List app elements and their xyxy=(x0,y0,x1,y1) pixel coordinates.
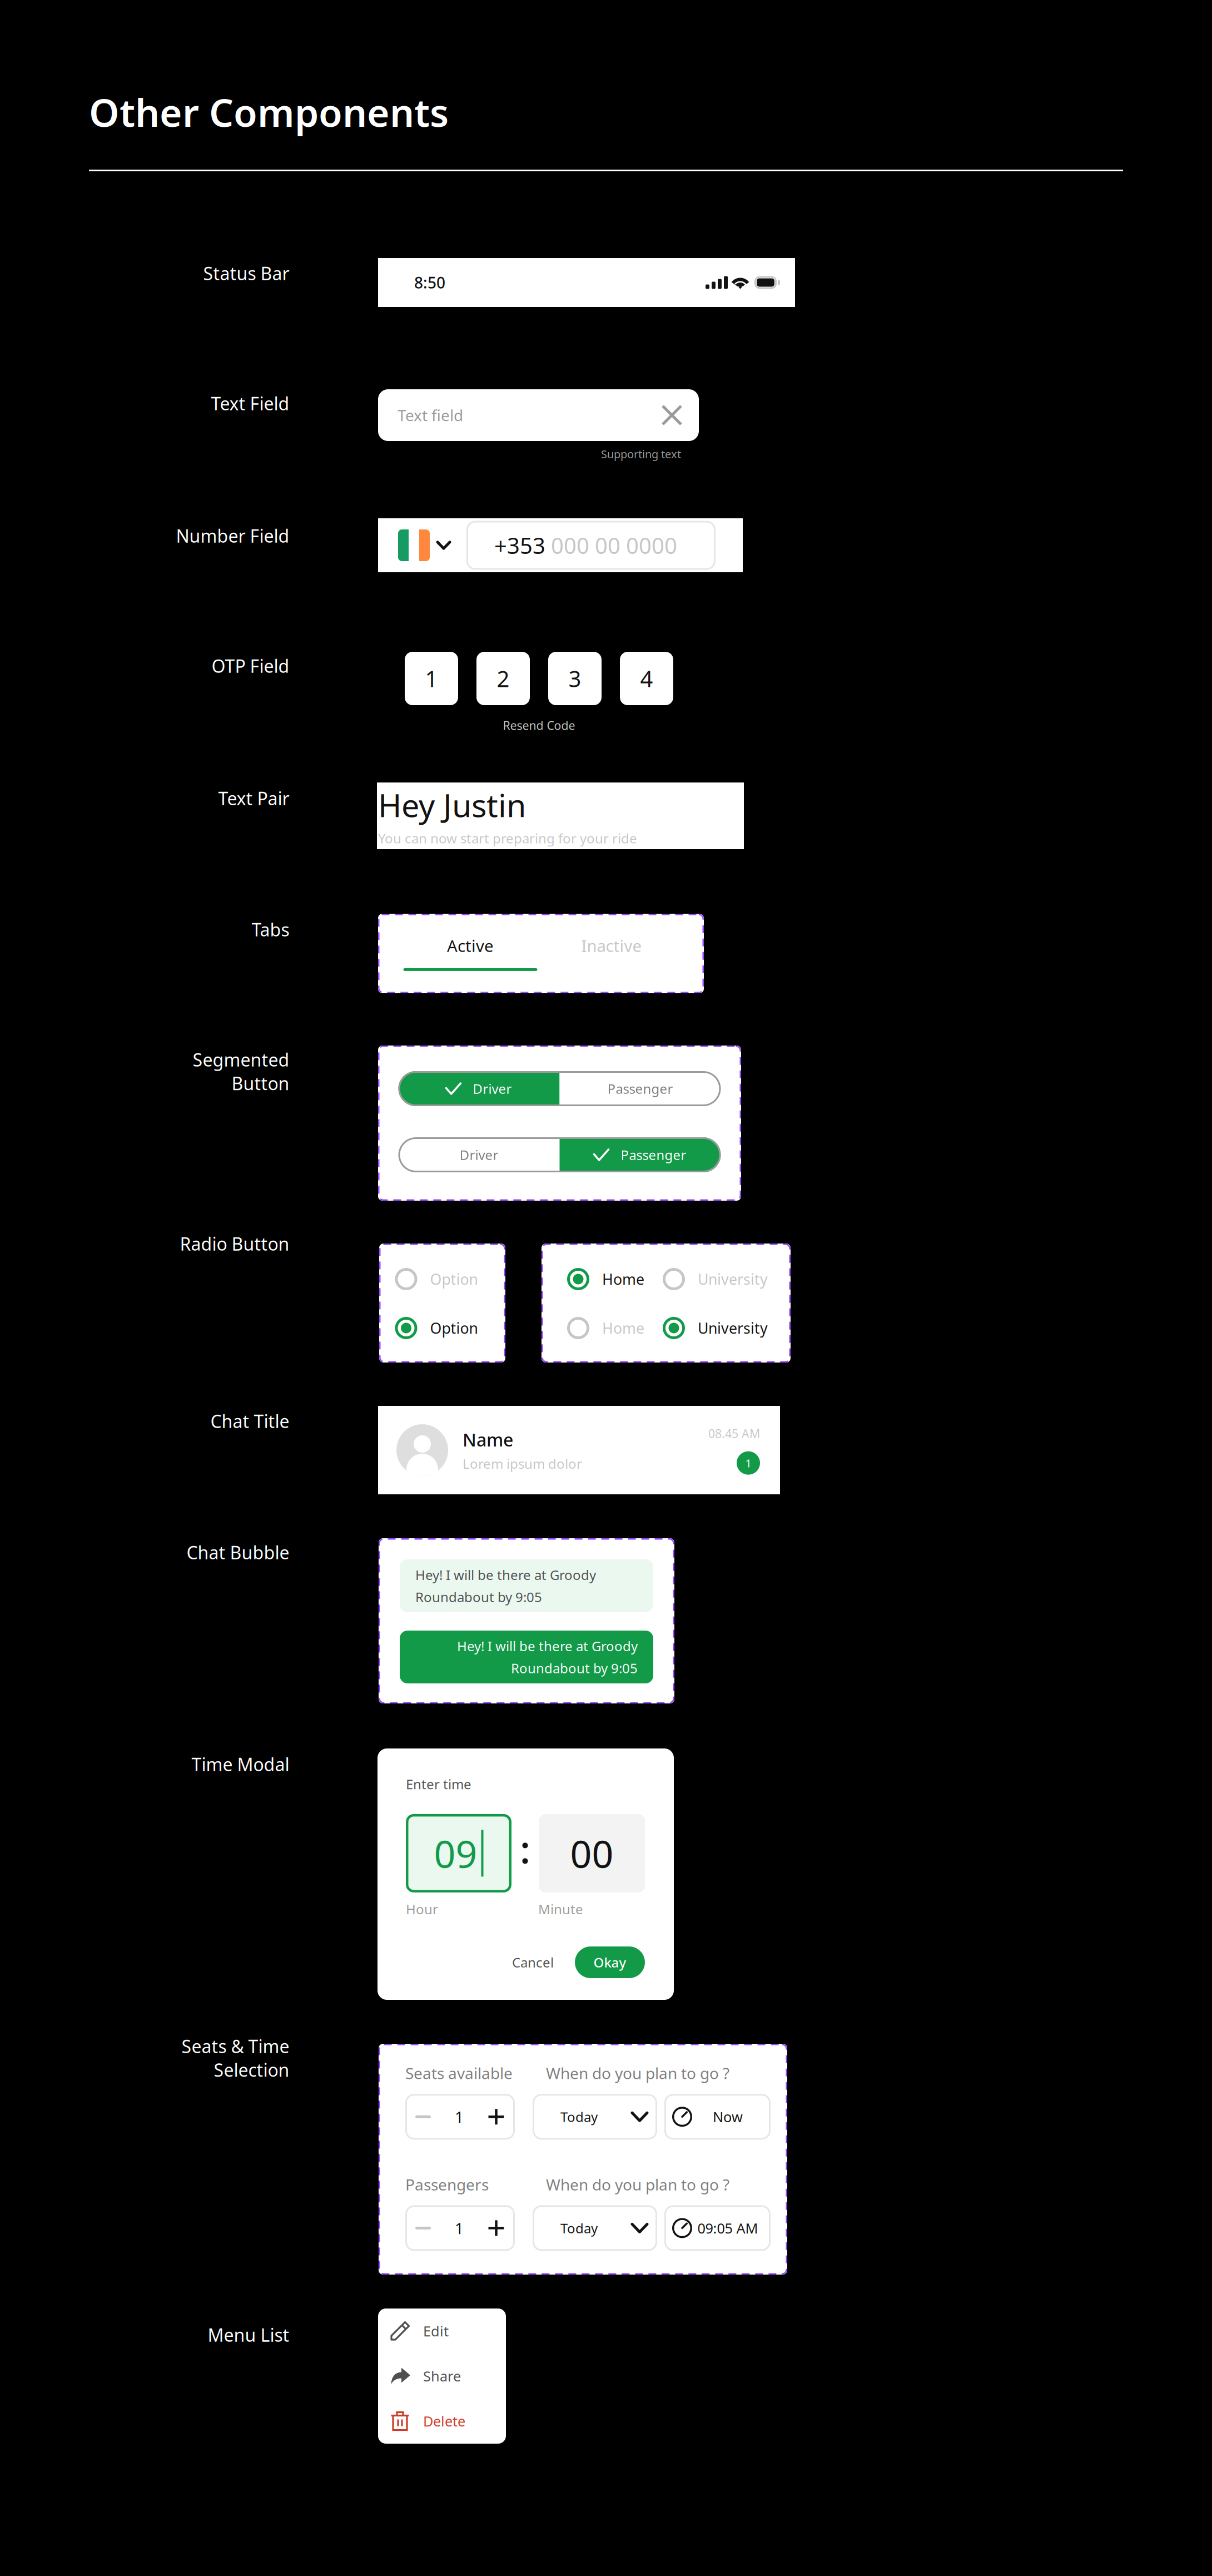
staticText: Roundabout by 9:05 xyxy=(511,1659,638,1677)
staticText: Now xyxy=(713,2107,743,2126)
button[interactable]: Clear text xyxy=(658,402,686,429)
button[interactable]: Option xyxy=(395,1268,491,1290)
staticText: Inactive xyxy=(581,935,642,957)
button[interactable]: Passenger xyxy=(560,1137,721,1172)
staticText: 09:05 AM xyxy=(697,2219,758,2237)
staticText: 8:50 xyxy=(414,272,445,293)
button[interactable]: Delete xyxy=(378,2399,506,2444)
staticText: Passenger xyxy=(621,1146,686,1164)
staticText: Passenger xyxy=(607,1080,673,1098)
staticText: Roundabout by 9:05 xyxy=(415,1588,542,1606)
button[interactable]: Option xyxy=(395,1317,491,1339)
staticText: Minute xyxy=(538,1900,583,1918)
button[interactable]: University xyxy=(663,1317,781,1339)
button[interactable]: Increase xyxy=(478,2094,515,2140)
button[interactable]: Edit xyxy=(378,2309,506,2354)
staticText: Seats available xyxy=(405,2063,513,2083)
button[interactable]: Home xyxy=(567,1268,666,1290)
staticText: When do you plan to go ? xyxy=(546,2063,729,2083)
staticText: Time Modal xyxy=(191,1752,289,1776)
button[interactable]: 3 xyxy=(548,652,602,705)
staticText: Home xyxy=(602,1318,644,1338)
staticText: University xyxy=(698,1318,768,1338)
staticText: Status Bar xyxy=(203,261,289,285)
staticText: Option xyxy=(430,1269,478,1289)
button[interactable]: Select country code xyxy=(398,529,450,561)
staticText: Lorem ipsum dolor xyxy=(463,1455,582,1472)
button[interactable]: Passenger xyxy=(560,1071,721,1106)
button[interactable]: Okay xyxy=(575,1946,645,1978)
button[interactable]: Cancel xyxy=(503,1948,563,1977)
staticText: Tabs xyxy=(251,918,289,941)
staticText: 1 xyxy=(455,2218,464,2238)
staticText: 00 xyxy=(570,1828,614,1878)
button[interactable]: 1 xyxy=(405,652,458,705)
staticText: 000 00 0000 xyxy=(545,530,677,560)
button[interactable]: Decrease xyxy=(405,2205,441,2251)
staticText: 4 xyxy=(640,664,653,693)
button[interactable]: Today xyxy=(533,2094,657,2140)
staticText: Text Pair xyxy=(218,786,289,810)
button[interactable]: Home xyxy=(567,1317,666,1339)
staticText: Text Field xyxy=(211,392,289,415)
staticText: 1 xyxy=(425,664,438,693)
staticText: Other Components xyxy=(89,86,449,137)
staticText: When do you plan to go ? xyxy=(546,2174,729,2195)
staticText: Seats & Time Selection xyxy=(181,2034,289,2082)
staticText: 09 xyxy=(434,1828,477,1878)
button[interactable]: Now xyxy=(664,2094,771,2140)
staticText: Option xyxy=(430,1318,478,1338)
staticText: Share xyxy=(423,2367,461,2385)
staticText: 1 xyxy=(745,1456,751,1470)
staticText: Cancel xyxy=(512,1953,554,1971)
staticText: +353 xyxy=(494,530,545,560)
staticText: Driver xyxy=(473,1080,512,1098)
button[interactable]: Increase xyxy=(478,2205,515,2251)
button[interactable]: Active xyxy=(400,914,541,993)
staticText: Menu List xyxy=(207,2323,289,2347)
staticText: Chat Bubble xyxy=(186,1540,289,1564)
staticText: Hey! I will be there at Groody xyxy=(457,1637,638,1655)
button[interactable]: Resend Code xyxy=(503,717,575,733)
staticText: Active xyxy=(447,935,494,957)
staticText: Hey! I will be there at Groody xyxy=(415,1566,596,1584)
staticText: Radio Button xyxy=(180,1232,289,1255)
button[interactable]: Driver xyxy=(398,1137,560,1172)
staticText: Supporting text xyxy=(601,447,681,461)
staticText: Today xyxy=(560,2108,598,2126)
button[interactable]: University xyxy=(663,1268,781,1290)
button[interactable]: 09:05 AM xyxy=(664,2205,771,2251)
staticText: 3 xyxy=(568,664,581,693)
staticText: Number Field xyxy=(176,524,289,548)
staticText: Hey Justin xyxy=(378,784,526,826)
staticText: Text field xyxy=(398,405,463,425)
staticText: Enter time xyxy=(406,1775,471,1793)
staticText: Delete xyxy=(423,2412,465,2430)
staticText: Chat Title xyxy=(210,1409,289,1433)
staticText: Today xyxy=(560,2219,598,2237)
staticText: Resend Code xyxy=(503,717,575,733)
staticText: OTP Field xyxy=(211,654,289,678)
button[interactable]: Decrease xyxy=(405,2094,441,2140)
staticText: Name xyxy=(463,1428,513,1451)
button[interactable]: Share xyxy=(378,2354,506,2399)
button[interactable]: Inactive xyxy=(541,914,682,993)
button[interactable]: Driver xyxy=(398,1071,560,1106)
staticText: Home xyxy=(602,1269,644,1289)
staticText: 1 xyxy=(455,2106,464,2127)
staticText: University xyxy=(698,1269,768,1289)
staticText: Segmented Button xyxy=(192,1048,289,1095)
staticText: Edit xyxy=(423,2322,449,2340)
staticText: Passengers xyxy=(405,2174,489,2195)
staticText: 2 xyxy=(497,664,510,693)
staticText: You can now start preparing for your rid… xyxy=(378,829,637,847)
staticText: 08.45 AM xyxy=(708,1426,760,1441)
staticText: Driver xyxy=(460,1146,498,1164)
button[interactable]: Today xyxy=(533,2205,657,2251)
staticText: Hour xyxy=(406,1900,438,1918)
button[interactable]: 4 xyxy=(620,652,673,705)
button[interactable]: 2 xyxy=(476,652,530,705)
staticText: Okay xyxy=(593,1953,626,1971)
